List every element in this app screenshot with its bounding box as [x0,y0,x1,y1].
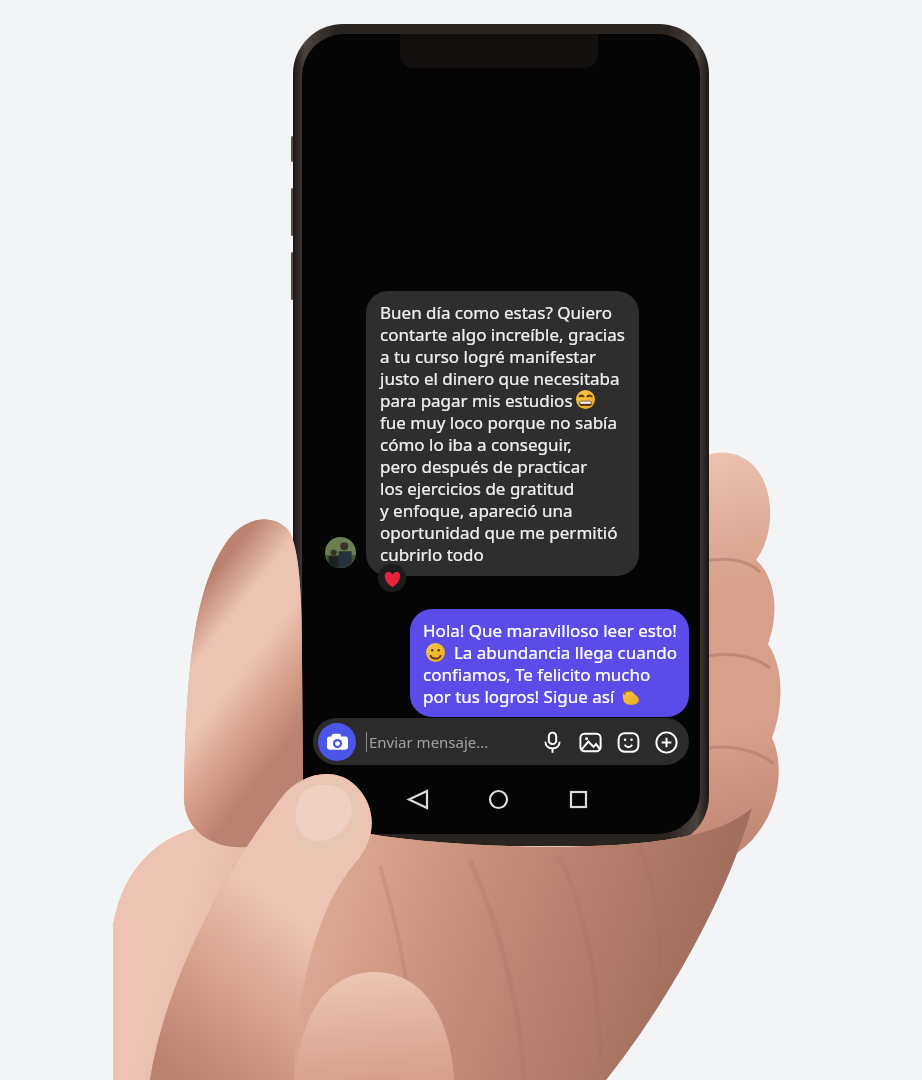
button[interactable]: Love reaction [378,564,406,592]
button[interactable]: Home [474,775,522,823]
staticText: Hola! Que maravilloso leer esto! La abun… [423,619,678,708]
button[interactable]: More options [651,727,681,757]
button[interactable]: Voice message [537,727,567,757]
staticText: Enviar mensaje... [369,732,489,752]
button[interactable]: Back [393,775,441,823]
button[interactable]: Gallery [575,727,605,757]
button[interactable]: Stickers [613,727,643,757]
button[interactable]: Buen día como estas? Quiero contarte alg… [366,291,639,576]
button[interactable]: Recent apps [554,775,602,823]
button[interactable]: Camera [318,723,356,761]
staticText: Buen día como estas? Quiero contarte alg… [380,301,625,566]
button[interactable]: Hola! Que maravilloso leer esto! La abun… [410,609,689,717]
